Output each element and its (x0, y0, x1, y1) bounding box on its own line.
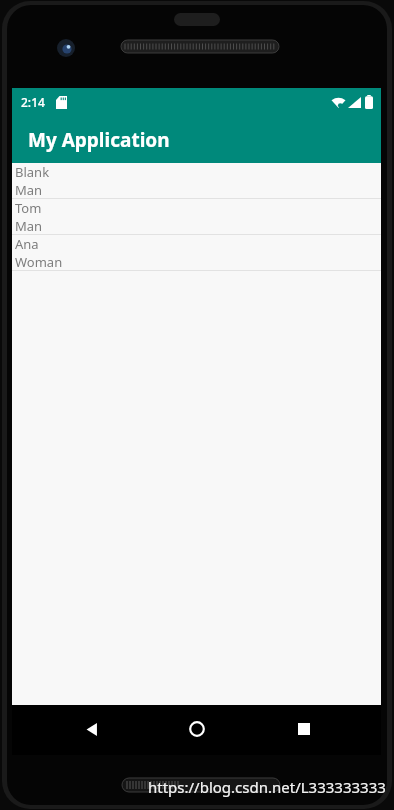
button[interactable]: Home (181, 713, 213, 745)
button[interactable]: Recent apps (288, 713, 320, 745)
staticText: Tom (15, 199, 42, 217)
button[interactable]: Ana (12, 235, 381, 271)
button[interactable]: Blank (12, 163, 381, 199)
staticText: Man (15, 217, 43, 234)
staticText: 2:14 (21, 94, 45, 110)
staticText: Woman (15, 253, 63, 270)
staticText: https://blog.csdn.net/L333333333 (148, 777, 386, 797)
button[interactable]: Back (75, 713, 107, 745)
staticText: Man (15, 181, 43, 198)
staticText: My Application (28, 127, 170, 153)
staticText: Ana (15, 235, 39, 253)
button[interactable]: Tom (12, 199, 381, 235)
staticText: Blank (15, 163, 50, 181)
